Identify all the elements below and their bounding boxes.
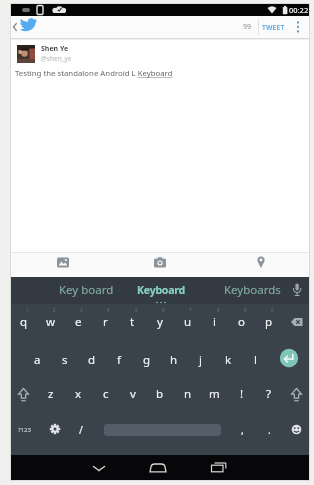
button[interactable]: g: [133, 344, 160, 375]
staticText: Shen Ye: [41, 44, 69, 54]
button[interactable]: p: [255, 308, 282, 336]
button[interactable]: [11, 21, 19, 33]
button[interactable]: ,: [229, 417, 255, 443]
button[interactable]: h: [160, 344, 187, 375]
staticText: k: [225, 352, 232, 368]
button[interactable]: q: [10, 308, 37, 336]
button[interactable]: Keyboards: [215, 282, 289, 298]
staticText: .: [268, 423, 271, 437]
staticText: x: [75, 386, 82, 402]
staticText: z: [48, 386, 54, 402]
staticText: c: [103, 386, 109, 402]
button[interactable]: s: [51, 344, 78, 375]
button[interactable]: i: [201, 308, 228, 336]
button[interactable]: n: [174, 378, 201, 409]
staticText: t: [130, 314, 135, 330]
staticText: !: [240, 386, 244, 402]
staticText: Keyboards: [224, 282, 281, 298]
staticText: w: [46, 314, 56, 330]
staticText: g: [143, 352, 151, 368]
button[interactable]: [19, 17, 39, 36]
button[interactable]: [10, 378, 37, 409]
staticText: ?: [266, 386, 271, 402]
button[interactable]: Key board: [49, 282, 123, 298]
button[interactable]: u: [174, 308, 201, 336]
staticText: q: [20, 314, 28, 330]
button[interactable]: ?: [255, 378, 282, 409]
staticText: s: [62, 352, 68, 368]
button[interactable]: a: [24, 344, 51, 375]
button[interactable]: t: [119, 308, 146, 336]
button[interactable]: b: [146, 378, 173, 409]
staticText: r: [103, 314, 108, 330]
staticText: 7: [189, 307, 192, 313]
button[interactable]: v: [119, 378, 146, 409]
staticText: n: [184, 386, 192, 402]
button[interactable]: [292, 18, 304, 36]
staticText: f: [117, 352, 121, 368]
staticText: ?123: [18, 426, 31, 434]
button[interactable]: [256, 256, 266, 269]
button[interactable]: [48, 422, 62, 436]
button[interactable]: w: [37, 308, 64, 336]
staticText: d: [88, 352, 96, 368]
button[interactable]: f: [105, 344, 132, 375]
button[interactable]: !: [228, 378, 255, 409]
button[interactable]: TWEET: [259, 19, 287, 35]
button[interactable]: z: [37, 378, 64, 409]
button[interactable]: .: [256, 417, 282, 443]
staticText: 3: [80, 307, 83, 313]
button[interactable]: c: [92, 378, 119, 409]
staticText: 1: [26, 307, 29, 313]
staticText: 2: [53, 307, 56, 313]
button[interactable]: [91, 461, 107, 475]
button[interactable]: [291, 282, 303, 299]
staticText: y: [157, 314, 163, 330]
button[interactable]: k: [215, 344, 242, 375]
button[interactable]: m: [201, 378, 228, 409]
button[interactable]: [210, 461, 227, 475]
staticText: b: [156, 386, 164, 402]
staticText: 0: [271, 307, 274, 313]
button[interactable]: d: [78, 344, 105, 375]
staticText: 5: [135, 307, 138, 313]
button[interactable]: [289, 422, 304, 437]
staticText: Testing the standalone Android L Keyboar…: [15, 68, 173, 79]
staticText: l: [254, 352, 257, 368]
button[interactable]: [17, 45, 35, 63]
button[interactable]: Keyboard: [124, 282, 198, 298]
button[interactable]: [279, 348, 299, 368]
button[interactable]: e: [65, 308, 92, 336]
staticText: TWEET: [262, 23, 285, 32]
staticText: ,: [241, 423, 244, 437]
button[interactable]: [56, 257, 70, 268]
staticText: j: [199, 352, 202, 368]
staticText: e: [75, 314, 82, 330]
staticText: 6: [162, 307, 165, 313]
staticText: 99: [243, 22, 252, 32]
button[interactable]: l: [242, 344, 269, 375]
staticText: h: [170, 352, 178, 368]
staticText: v: [130, 386, 136, 402]
button[interactable]: /: [68, 417, 94, 443]
staticText: 9: [244, 307, 247, 313]
button[interactable]: o: [228, 308, 255, 336]
staticText: p: [265, 314, 273, 330]
button[interactable]: x: [65, 378, 92, 409]
staticText: Keyboard: [137, 283, 186, 297]
button[interactable]: y: [146, 308, 173, 336]
button[interactable]: [283, 308, 310, 336]
staticText: 8: [217, 307, 220, 313]
staticText: a: [34, 352, 41, 368]
staticText: 00:22: [289, 5, 309, 15]
button[interactable]: ?123: [12, 416, 36, 444]
button[interactable]: r: [92, 308, 119, 336]
staticText: m: [209, 386, 220, 402]
button[interactable]: j: [187, 344, 214, 375]
staticText: o: [238, 314, 245, 330]
button[interactable]: [153, 257, 167, 268]
button[interactable]: [149, 461, 167, 475]
staticText: /: [79, 423, 83, 437]
button[interactable]: [283, 378, 310, 409]
